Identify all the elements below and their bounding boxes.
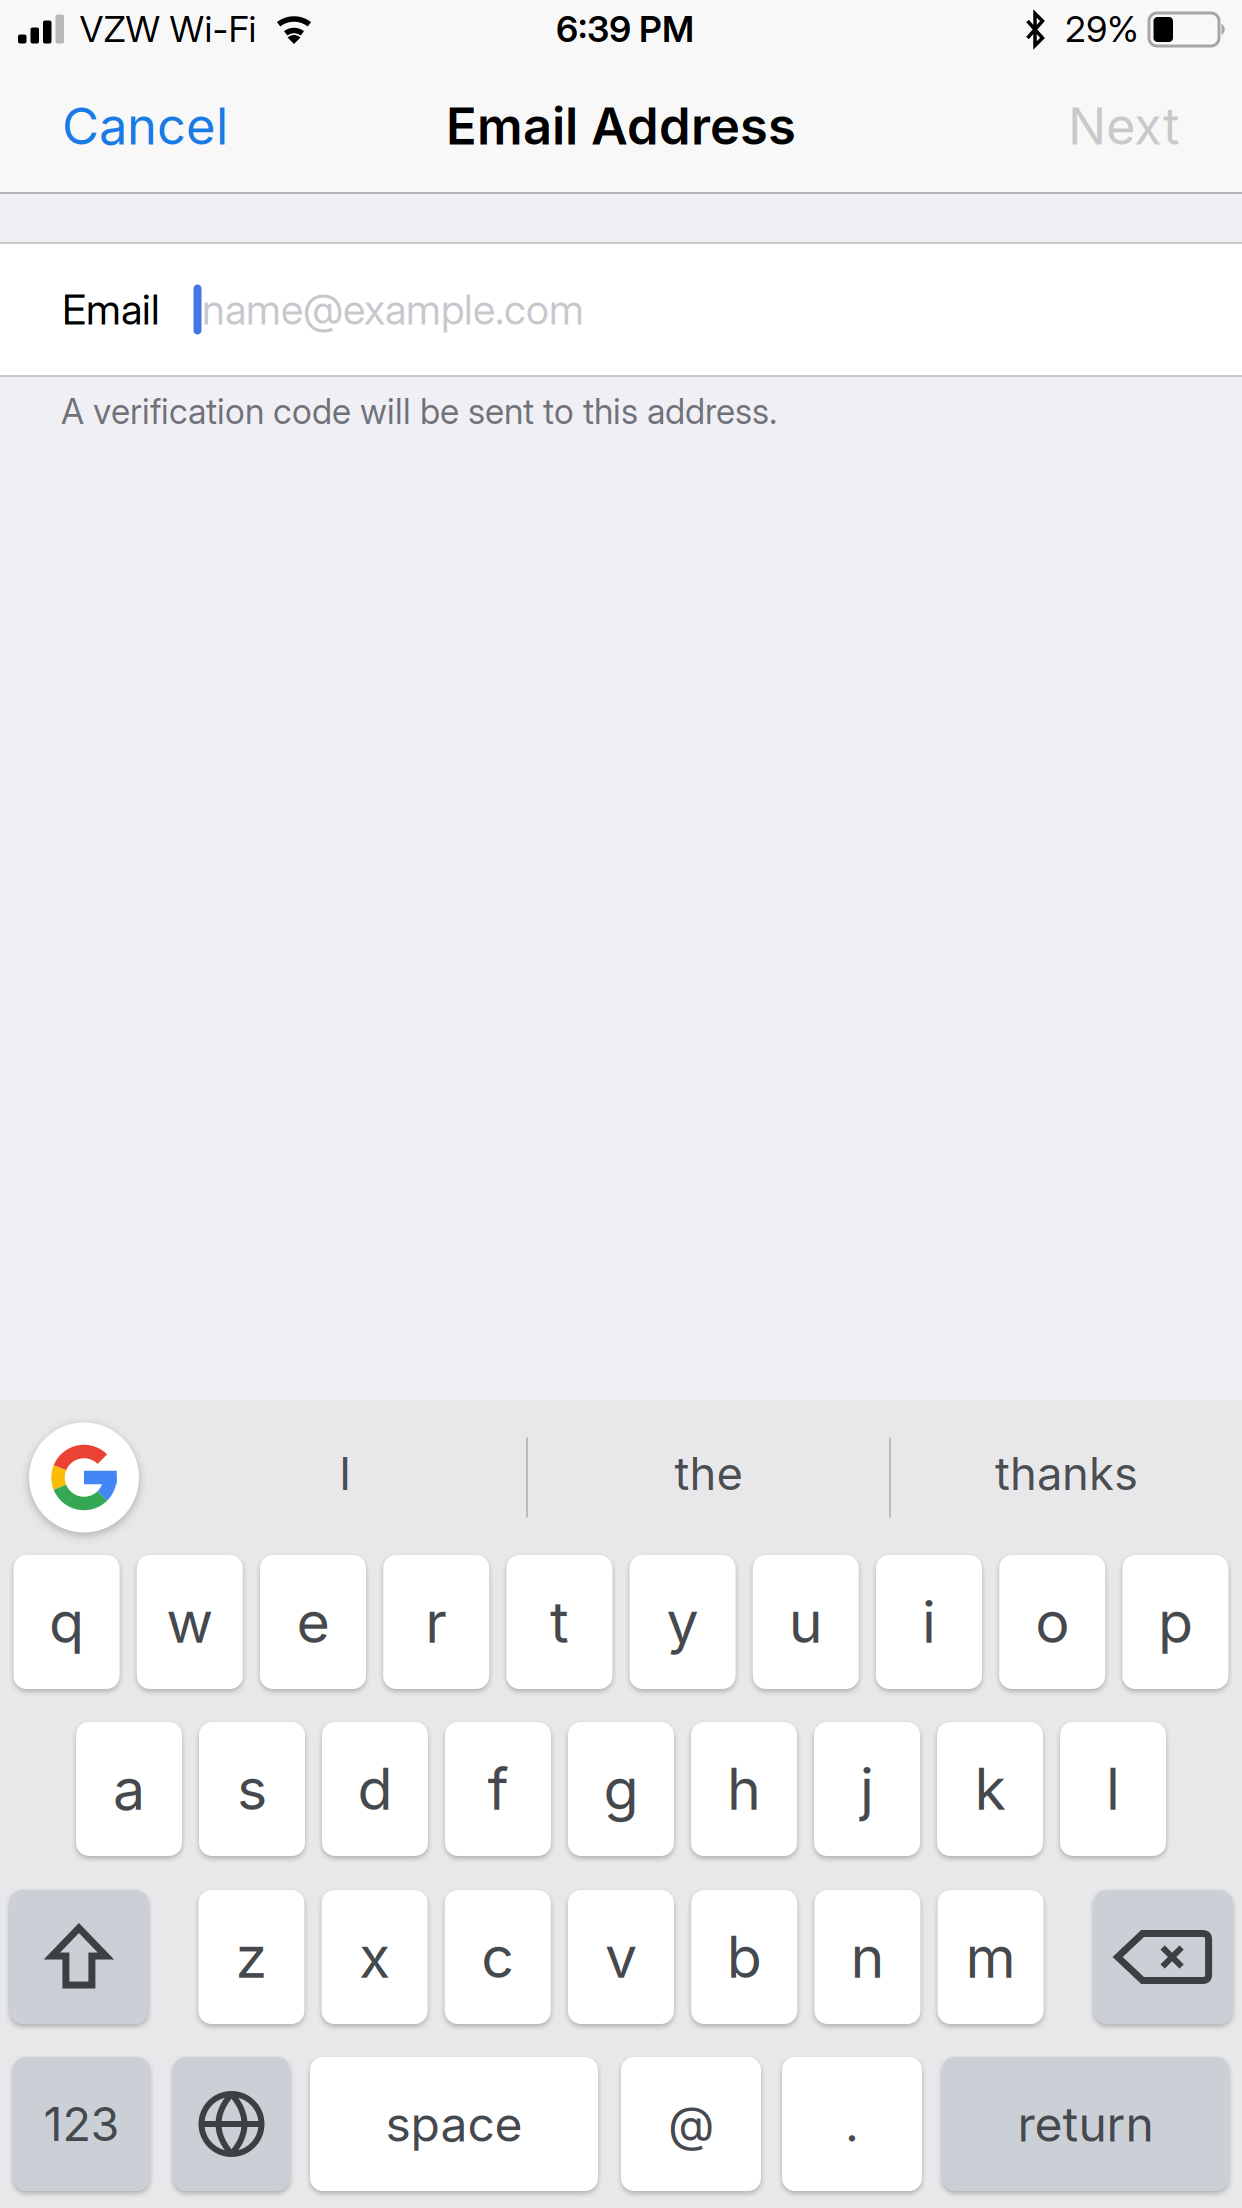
staticText: 29% xyxy=(1065,8,1139,50)
staticText: I xyxy=(339,1447,351,1500)
button[interactable]: @ xyxy=(621,2057,761,2191)
staticText: Cancel xyxy=(62,96,228,156)
button[interactable]: o xyxy=(999,1555,1105,1689)
button[interactable]: m xyxy=(938,1890,1044,2024)
staticText: e xyxy=(296,1588,329,1656)
button[interactable]: r xyxy=(383,1555,489,1689)
staticText: s xyxy=(237,1755,267,1823)
staticText: return xyxy=(1017,2096,1153,2152)
staticText: VZW Wi-Fi xyxy=(79,8,256,50)
staticText: d xyxy=(357,1755,392,1823)
button[interactable]: v xyxy=(568,1890,674,2024)
button[interactable]: l xyxy=(1060,1722,1166,1856)
button[interactable]: return xyxy=(942,2057,1229,2191)
staticText: Next xyxy=(1068,96,1180,156)
button[interactable]: u xyxy=(753,1555,859,1689)
button[interactable]: c xyxy=(445,1890,551,2024)
staticText: . xyxy=(845,2096,859,2152)
staticText: r xyxy=(425,1588,447,1656)
button[interactable]: s xyxy=(199,1722,305,1856)
button[interactable]: h xyxy=(691,1722,797,1856)
button[interactable]: Email xyxy=(0,244,1242,375)
staticText: g xyxy=(603,1755,638,1823)
staticText: t xyxy=(550,1588,569,1656)
button[interactable]: j xyxy=(814,1722,920,1856)
button[interactable]: i xyxy=(876,1555,982,1689)
button[interactable]: space xyxy=(310,2057,598,2191)
button[interactable]: t xyxy=(506,1555,612,1689)
staticText: name@example.com xyxy=(202,285,584,334)
button[interactable]: z xyxy=(198,1890,304,2024)
staticText: w xyxy=(166,1588,213,1656)
staticText: a xyxy=(113,1755,145,1823)
button[interactable]: n xyxy=(814,1890,920,2024)
button[interactable]: f xyxy=(445,1722,551,1856)
staticText: p xyxy=(1158,1588,1193,1656)
staticText: h xyxy=(727,1755,761,1823)
staticText: k xyxy=(974,1755,1005,1823)
button[interactable]: q xyxy=(14,1555,120,1689)
button[interactable]: I xyxy=(164,1400,526,1555)
button[interactable]: g xyxy=(568,1722,674,1856)
staticText: n xyxy=(850,1923,884,1991)
staticText: i xyxy=(922,1588,936,1656)
button[interactable]: . xyxy=(782,2057,922,2191)
staticText: c xyxy=(481,1923,514,1991)
button[interactable]: the xyxy=(528,1400,889,1555)
button[interactable]: e xyxy=(260,1555,366,1689)
staticText: y xyxy=(667,1588,699,1656)
button[interactable]: p xyxy=(1122,1555,1228,1689)
staticText: z xyxy=(235,1923,267,1991)
staticText: @ xyxy=(668,2096,714,2152)
staticText: b xyxy=(727,1923,762,1991)
staticText: thanks xyxy=(995,1447,1138,1500)
staticText: l xyxy=(1106,1755,1120,1823)
button[interactable] xyxy=(1094,1890,1233,2024)
button[interactable]: thanks xyxy=(891,1400,1242,1555)
button[interactable]: d xyxy=(322,1722,428,1856)
button[interactable] xyxy=(9,1890,148,2024)
button[interactable]: Next xyxy=(1068,96,1242,156)
button[interactable]: k xyxy=(937,1722,1043,1856)
staticText: u xyxy=(789,1588,823,1656)
staticText: o xyxy=(1035,1588,1069,1656)
staticText: space xyxy=(385,2096,522,2152)
button[interactable]: 123 xyxy=(13,2057,150,2191)
staticText: m xyxy=(966,1923,1016,1991)
staticText: Email xyxy=(62,285,160,334)
staticText: f xyxy=(487,1755,508,1823)
button[interactable]: a xyxy=(76,1722,182,1856)
staticText: q xyxy=(49,1588,84,1656)
button[interactable]: b xyxy=(691,1890,797,2024)
button[interactable]: x xyxy=(322,1890,428,2024)
staticText: v xyxy=(605,1923,637,1991)
staticText: Email Address xyxy=(446,96,796,156)
staticText: 6:39 PM xyxy=(556,8,694,50)
staticText: x xyxy=(359,1923,390,1991)
staticText: j xyxy=(860,1755,874,1823)
staticText: 123 xyxy=(43,2096,119,2152)
button[interactable] xyxy=(173,2057,290,2191)
button[interactable] xyxy=(0,1422,139,1532)
staticText: A verification code will be sent to this… xyxy=(61,391,777,432)
button[interactable]: y xyxy=(630,1555,736,1689)
staticText: the xyxy=(674,1447,742,1500)
button[interactable]: w xyxy=(137,1555,243,1689)
button[interactable]: Cancel xyxy=(0,96,228,156)
